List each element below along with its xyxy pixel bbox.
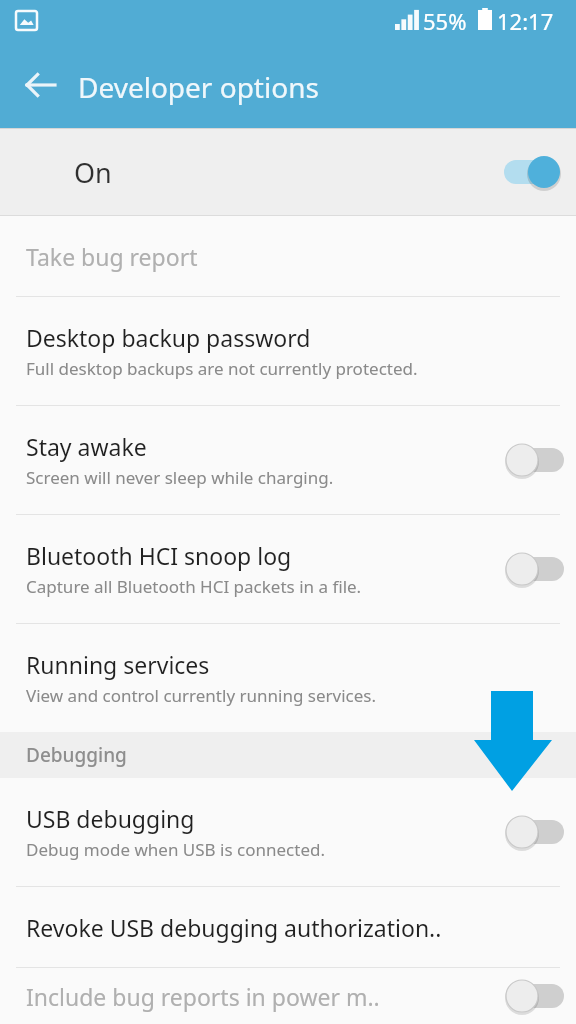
staticText: Capture all Bluetooth HCI packets in a f… bbox=[26, 575, 362, 598]
button[interactable]: Revoke USB debugging authorization.. bbox=[0, 887, 576, 967]
button[interactable]: USB debugging bbox=[0, 778, 576, 886]
button[interactable]: Back bbox=[12, 57, 68, 113]
button[interactable]: On bbox=[0, 129, 576, 215]
staticText: Running services bbox=[26, 649, 210, 680]
staticText: View and control currently running servi… bbox=[26, 684, 376, 707]
staticText: Debug mode when USB is connected. bbox=[26, 838, 325, 861]
staticText: Full desktop backups are not currently p… bbox=[26, 357, 418, 380]
button[interactable]: Desktop backup password bbox=[0, 297, 576, 405]
button[interactable]: Bluetooth HCI snoop log bbox=[0, 515, 576, 623]
staticText: Debugging bbox=[26, 742, 127, 768]
button[interactable]: Take bug report bbox=[0, 216, 576, 296]
staticText: Desktop backup password bbox=[26, 322, 311, 353]
staticText: Stay awake bbox=[26, 431, 147, 462]
staticText: On bbox=[74, 154, 498, 191]
staticText: Bluetooth HCI snoop log bbox=[26, 540, 292, 571]
staticText: Screen will never sleep while charging. bbox=[26, 466, 334, 489]
button[interactable]: Stay awake bbox=[0, 406, 576, 514]
staticText: USB debugging bbox=[26, 803, 195, 834]
staticText: Revoke USB debugging authorization.. bbox=[26, 912, 442, 943]
staticText: Developer options bbox=[78, 68, 319, 106]
button[interactable]: Include bug reports in power m.. bbox=[0, 968, 576, 1024]
staticText: Take bug report bbox=[26, 241, 198, 272]
staticText: 55% bbox=[423, 6, 467, 36]
button[interactable]: Running services bbox=[0, 624, 576, 732]
staticText: Include bug reports in power m.. bbox=[26, 981, 380, 1012]
staticText: 12:17 bbox=[497, 6, 554, 36]
